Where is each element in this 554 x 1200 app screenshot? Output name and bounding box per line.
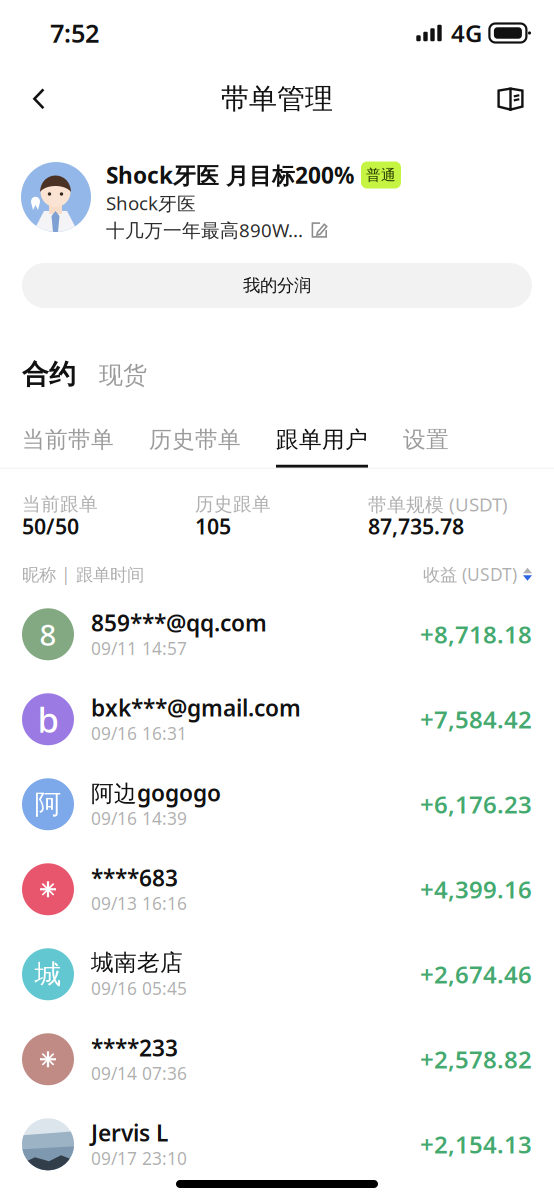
staticText: 09/14 07:36	[91, 1062, 187, 1085]
staticText: +6,176.23	[420, 788, 532, 820]
button[interactable]: 历史带单	[149, 428, 241, 468]
button[interactable]: b	[0, 677, 554, 762]
button[interactable]: 8	[0, 592, 554, 677]
staticText: 87,735.78	[368, 512, 464, 540]
staticText: Shock牙医 月目标200%	[106, 160, 354, 190]
staticText: 收益 (USDT)	[423, 563, 517, 586]
button[interactable]: Guide	[477, 77, 554, 121]
staticText: 历史跟单	[195, 493, 271, 516]
button[interactable]: 当前带单	[22, 428, 114, 468]
button[interactable]: 现货	[99, 360, 147, 390]
staticText: 09/16 16:31	[91, 722, 187, 745]
button[interactable]: 城	[0, 932, 554, 1017]
button[interactable]: Back	[0, 77, 65, 121]
staticText: 当前带单	[22, 426, 114, 454]
staticText: 8	[39, 615, 56, 654]
button[interactable]: 阿	[0, 762, 554, 847]
staticText: b	[37, 696, 58, 742]
staticText: 09/11 14:57	[91, 637, 187, 660]
staticText: 昵称 | 跟单时间	[22, 563, 144, 586]
staticText: 带单规模 (USDT)	[368, 492, 508, 517]
staticText: 十几万一年最高890W...	[106, 218, 303, 242]
staticText: 50/50	[22, 512, 79, 540]
staticText: 859***@qq.com	[91, 608, 267, 638]
staticText: 合约	[22, 358, 76, 391]
staticText: 7:52	[50, 16, 99, 50]
staticText: ****683	[91, 863, 178, 893]
staticText: 09/13 16:16	[91, 892, 187, 915]
staticText: 我的分润	[243, 275, 311, 296]
staticText: +8,718.18	[420, 618, 532, 650]
staticText: +2,578.82	[420, 1043, 532, 1075]
button[interactable]: 合约	[22, 358, 76, 391]
staticText: +2,154.13	[420, 1128, 532, 1160]
staticText: +4,399.16	[420, 873, 532, 905]
staticText: 09/16 14:39	[91, 807, 187, 830]
button[interactable]: ****233	[0, 1017, 554, 1102]
button[interactable]: 设置	[403, 428, 449, 468]
staticText: 09/16 05:45	[91, 977, 187, 1000]
button[interactable]: 跟单用户	[276, 428, 368, 468]
button[interactable]: ****683	[0, 847, 554, 932]
button[interactable]: Edit description	[311, 221, 328, 238]
staticText: 带单管理	[221, 82, 333, 116]
staticText: 跟单用户	[276, 426, 368, 454]
staticText: 105	[195, 512, 231, 540]
staticText: ****233	[91, 1033, 178, 1063]
staticText: 历史带单	[149, 426, 241, 454]
staticText: Jervis L	[91, 1118, 168, 1148]
staticText: +7,584.42	[420, 703, 532, 735]
staticText: 09/17 23:10	[91, 1147, 187, 1170]
staticText: bxk***@gmail.com	[91, 693, 301, 723]
staticText: 阿边gogogo	[91, 778, 221, 808]
staticText: +2,674.46	[420, 958, 532, 990]
staticText: 城南老店	[91, 949, 183, 977]
staticText: 城	[34, 958, 61, 991]
staticText: 阿	[34, 788, 61, 821]
button[interactable]: 我的分润	[0, 263, 554, 308]
button[interactable]: Jervis L	[0, 1102, 554, 1187]
staticText: 普通	[366, 166, 396, 184]
staticText: 现货	[99, 360, 147, 390]
staticText: Shock牙医	[106, 191, 196, 215]
staticText: 设置	[403, 426, 449, 454]
staticText: 4G	[451, 17, 482, 49]
staticText: 当前跟单	[22, 493, 98, 516]
